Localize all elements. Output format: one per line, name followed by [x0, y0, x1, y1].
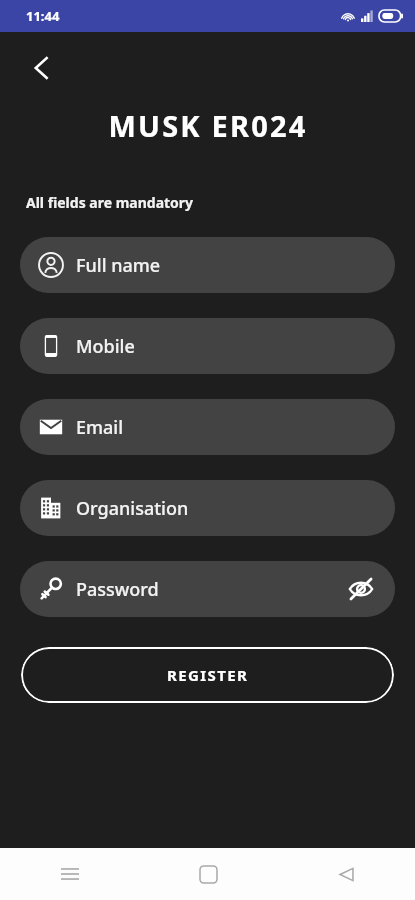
staticText: Mobile [76, 334, 135, 359]
button[interactable]: Back [277, 848, 415, 900]
staticText: All fields are mandatory [26, 193, 194, 212]
staticText: REGISTER [167, 665, 249, 685]
staticText: MUSK ER024 [108, 106, 308, 145]
staticText: Full name [76, 253, 161, 278]
button[interactable]: Recent apps [0, 848, 139, 900]
staticText: Organisation [76, 496, 189, 521]
button[interactable]: Mobile [20, 318, 395, 374]
button[interactable]: Show password [345, 573, 377, 605]
staticText: Password [76, 577, 159, 602]
staticText: Email [76, 415, 124, 440]
button[interactable]: Organisation [20, 480, 395, 536]
button[interactable]: Email [20, 399, 395, 455]
button[interactable]: REGISTER [21, 647, 394, 703]
staticText: 11:44 [26, 7, 60, 25]
button[interactable]: Home [139, 848, 277, 900]
button[interactable]: Full name [20, 237, 395, 293]
button[interactable]: Back [18, 44, 66, 92]
button[interactable]: Password [20, 561, 395, 617]
